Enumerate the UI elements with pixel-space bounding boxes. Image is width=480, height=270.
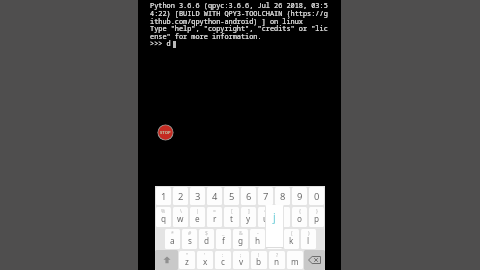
staticText: p: [314, 213, 320, 224]
button[interactable]: }: [309, 207, 324, 227]
button[interactable]: Shift: [155, 250, 178, 270]
button[interactable]: ": [179, 251, 195, 269]
staticText: [: [231, 208, 233, 215]
staticText: d: [204, 235, 210, 246]
staticText: c: [221, 256, 225, 267]
staticText: >: [281, 208, 284, 215]
button[interactable]: ;: [233, 251, 249, 269]
staticText: q: [161, 213, 167, 224]
staticText: 4: [212, 190, 218, 203]
button[interactable]: %: [156, 207, 171, 227]
staticText: l: [307, 235, 310, 246]
staticText: 2: [178, 190, 184, 203]
staticText: 0: [314, 190, 320, 203]
staticText: f: [222, 235, 225, 246]
button[interactable]: Backspace: [304, 250, 325, 270]
button[interactable]: 0: [309, 187, 324, 205]
button[interactable]: :: [215, 251, 231, 269]
staticText: >>> d: [150, 39, 171, 48]
staticText: v: [239, 256, 244, 267]
button[interactable]: $: [199, 229, 214, 249]
button[interactable]: ]: [241, 207, 256, 227]
button[interactable]: <: [258, 207, 273, 227]
staticText: ense" for more information.: [150, 32, 262, 41]
staticText: s: [188, 235, 192, 246]
staticText: Python 3.6.6 (qpyc:3.6.6, Jul 26 2018, 0…: [150, 1, 328, 10]
button[interactable]: [: [224, 207, 239, 227]
staticText: e: [195, 213, 200, 224]
button[interactable]: {: [292, 207, 307, 227]
staticText: !: [258, 252, 260, 259]
staticText: 3: [195, 190, 201, 203]
staticText: 5: [229, 190, 235, 203]
staticText: ": [186, 252, 189, 259]
button[interactable]: |: [190, 207, 205, 227]
staticText: n: [274, 256, 280, 267]
button[interactable]: 9: [292, 187, 307, 205]
staticText: ?: [276, 252, 279, 259]
staticText: o: [297, 213, 302, 224]
staticText: :: [222, 252, 224, 259]
button[interactable]: 5: [224, 187, 239, 205]
staticText: *: [171, 230, 174, 237]
staticText: &: [239, 230, 243, 237]
button[interactable]: =: [207, 207, 222, 227]
button[interactable]: 7: [258, 187, 273, 205]
staticText: x: [203, 256, 208, 267]
button[interactable]: 1: [156, 187, 171, 205]
staticText: 7: [263, 190, 269, 203]
button[interactable]: 8: [275, 187, 290, 205]
staticText: %: [161, 208, 166, 215]
staticText: <: [264, 208, 267, 215]
staticText: (: [291, 230, 293, 237]
button[interactable]: Stop script: [157, 124, 174, 141]
button[interactable]: 4: [207, 187, 222, 205]
staticText: j: [273, 209, 276, 224]
staticText: Type "help", "copyright", "credits" or "…: [150, 24, 328, 33]
staticText: 1: [161, 190, 167, 203]
staticText: |: [196, 208, 199, 215]
staticText: ;: [240, 252, 242, 259]
button[interactable]: (: [284, 229, 299, 249]
staticText: ': [204, 252, 206, 259]
staticText: t: [230, 213, 233, 224]
button[interactable]: m: [287, 251, 303, 269]
staticText: ): [308, 230, 310, 237]
button[interactable]: +: [267, 229, 282, 249]
button[interactable]: ': [197, 251, 213, 269]
staticText: \: [180, 208, 182, 215]
button[interactable]: &: [233, 229, 248, 249]
button[interactable]: 3: [190, 187, 205, 205]
staticText: =: [213, 208, 216, 215]
button[interactable]: \: [173, 207, 188, 227]
staticText: u: [263, 213, 269, 224]
button[interactable]: _: [216, 229, 231, 249]
button[interactable]: *: [165, 229, 180, 249]
staticText: w: [177, 213, 184, 224]
staticText: i: [281, 213, 284, 224]
staticText: m: [291, 256, 299, 267]
staticText: 8: [280, 190, 286, 203]
staticText: {: [299, 208, 301, 215]
button[interactable]: !: [251, 251, 267, 269]
button[interactable]: ?: [269, 251, 285, 269]
button[interactable]: #: [182, 229, 197, 249]
button[interactable]: -: [250, 229, 265, 249]
staticText: STOP: [160, 130, 171, 136]
staticText: #: [188, 230, 192, 237]
staticText: _: [222, 230, 225, 237]
staticText: 4:22) [BUILD WITH QPY3-TOOLCHAIN (https:…: [150, 9, 328, 18]
button[interactable]: ): [301, 229, 316, 249]
button[interactable]: 2: [173, 187, 188, 205]
staticText: $: [205, 230, 208, 237]
button[interactable]: 6: [241, 187, 256, 205]
staticText: 9: [297, 190, 303, 203]
staticText: k: [289, 235, 294, 246]
staticText: z: [185, 256, 189, 267]
staticText: ithub.com/qpython-android) ] on linux: [150, 17, 303, 26]
staticText: a: [170, 235, 175, 246]
staticText: y: [246, 213, 251, 224]
button[interactable]: >: [275, 207, 290, 227]
